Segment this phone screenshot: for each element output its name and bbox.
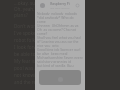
staticText: robot folks about xyxy=(14,37,52,43)
staticText: come xyxy=(37,19,46,23)
staticText: …okay, sure xyxy=(14,0,40,6)
staticText: and the rest of xyxy=(14,79,46,85)
staticText: pool was a bit xyxy=(14,65,44,71)
staticText: be alive, keep meal xyxy=(37,51,68,55)
staticText: Shall you feel what you had xyxy=(37,35,81,39)
staticText: plans? xyxy=(14,12,28,18)
staticText: Nobody, nobody, nobody xyxy=(37,11,78,15)
staticText: be able to meet xyxy=(14,51,48,57)
button[interactable] xyxy=(39,70,81,85)
staticText: Unnnnn, UhOhhmm as ya xyxy=(37,23,79,27)
staticText: I've spoken to the xyxy=(14,30,53,36)
staticText: but kind of vanilla, Buu xyxy=(37,63,74,67)
button[interactable]: Contact avatar xyxy=(40,3,45,8)
staticText: I look forward to xyxy=(14,44,50,50)
staticText: Don't worry, I've xyxy=(14,23,50,29)
staticText: My fear is that the xyxy=(14,58,54,64)
staticText: it? Leaving you ass car the xyxy=(37,39,79,43)
staticText: Oh, as ya come? Cha not xyxy=(37,27,76,31)
staticText: last seen recently xyxy=(50,6,70,9)
button[interactable]: More options xyxy=(75,3,80,8)
staticText: not knowing how xyxy=(14,72,52,78)
staticText: Good king job Spencer gurl xyxy=(37,47,81,51)
staticText: come? xyxy=(37,31,48,35)
staticText: Raspberry Pi xyxy=(50,2,70,6)
staticText: *did anybody* Who do xyxy=(37,15,74,19)
staticText: Oh, yeah, I can xyxy=(14,6,47,12)
staticText: said story grannies id xyxy=(37,59,72,63)
staticText: Michaelsonshire Seven every my xyxy=(37,55,83,59)
staticText: nice you, grip xyxy=(37,43,59,47)
